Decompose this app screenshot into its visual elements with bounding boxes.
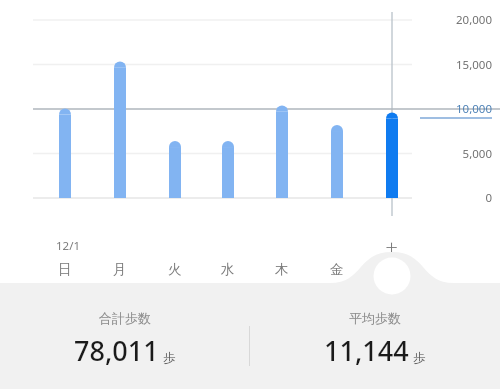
staticText: 15,000	[418, 57, 492, 73]
staticText: 5,000	[418, 146, 492, 162]
button[interactable]: 日	[49, 258, 81, 280]
staticText: 月	[113, 261, 127, 278]
staticText: 11,144	[324, 332, 409, 369]
staticText: 日	[58, 261, 72, 278]
button[interactable]: 平均歩数	[250, 310, 500, 369]
button[interactable]: 月	[104, 258, 136, 280]
staticText: 火	[168, 261, 182, 278]
staticText: 水	[221, 261, 235, 278]
button[interactable]: 火	[159, 258, 191, 280]
staticText: 20,000	[418, 12, 492, 28]
staticText: 10,000	[418, 101, 492, 117]
staticText: 平均歩数	[349, 310, 401, 326]
staticText: 12/1	[56, 238, 81, 254]
button[interactable]: 金	[321, 258, 353, 280]
button[interactable]: 木	[266, 258, 298, 280]
button[interactable]: 水	[212, 258, 244, 280]
staticText: 78,011	[74, 332, 159, 369]
button[interactable]: 合計歩数	[0, 310, 249, 369]
staticText: 0	[418, 190, 492, 206]
staticText: 木	[275, 261, 289, 278]
staticText: 合計歩数	[99, 310, 151, 326]
staticText: 金	[330, 261, 344, 278]
staticText: 土	[385, 241, 399, 258]
staticText: 歩	[163, 350, 176, 366]
button[interactable]: 土	[376, 238, 408, 260]
staticText: 歩	[413, 350, 426, 366]
